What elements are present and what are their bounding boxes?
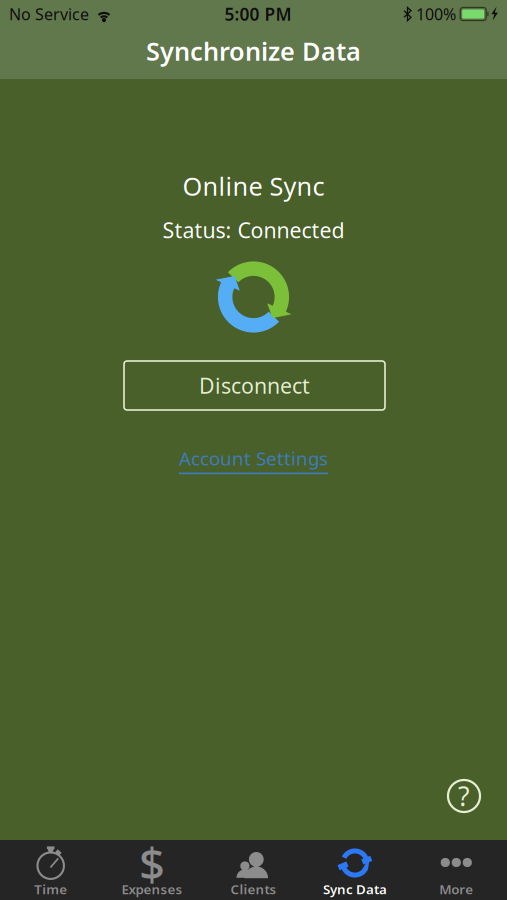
button[interactable]: Disconnect (124, 361, 385, 410)
button[interactable]: Help (442, 774, 486, 818)
staticText: Expenses (122, 880, 183, 898)
staticText: Synchronize Data (146, 34, 361, 68)
staticText: No Service (9, 3, 89, 25)
button[interactable]: Sync Data (304, 840, 406, 900)
staticText: Account Settings (179, 446, 328, 471)
staticText: 100% (416, 3, 456, 25)
staticText: 5:00 PM (224, 2, 291, 25)
staticText: Clients (230, 880, 276, 898)
staticText: Time (34, 880, 67, 898)
staticText: Sync Data (323, 880, 387, 898)
button[interactable]: More (406, 840, 507, 900)
staticText: Status: Connected (162, 216, 344, 244)
staticText: Online Sync (182, 169, 324, 203)
staticText: More (439, 880, 473, 898)
staticText: Disconnect (199, 371, 310, 400)
button[interactable]: Time (0, 840, 101, 900)
staticText: ? (458, 778, 470, 814)
button[interactable]: $ (101, 840, 203, 900)
button[interactable]: Account Settings (0, 445, 507, 475)
button[interactable]: Clients (203, 840, 304, 900)
staticText: $ (139, 833, 165, 893)
